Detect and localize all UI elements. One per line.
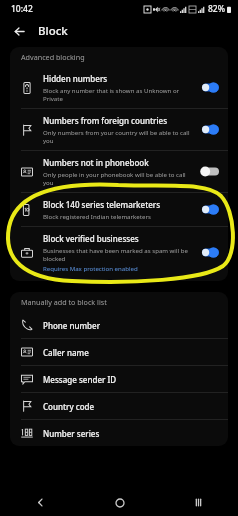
button[interactable]: Home: [80, 489, 159, 516]
button[interactable]: Country code: [10, 393, 228, 419]
staticText: Manually add to block list: [21, 297, 107, 307]
button[interactable]: Back: [0, 489, 80, 516]
staticText: Only people in your phonebook will be ab…: [43, 170, 194, 186]
button[interactable]: Enabled: [199, 204, 219, 215]
button[interactable]: Block verified businesses: [10, 227, 228, 278]
staticText: Advanced blocking: [21, 52, 85, 62]
button[interactable]: Caller name: [10, 339, 228, 365]
staticText: Caller name: [43, 347, 89, 358]
staticText: Message sender ID: [43, 374, 117, 385]
staticText: Block registered Indian telemarketers: [43, 212, 151, 220]
staticText: Requires Max protection enabled: [43, 264, 138, 272]
button[interactable]: Numbers not in phonebook: [10, 151, 228, 192]
button[interactable]: Enabled: [199, 247, 219, 258]
staticText: Block: [38, 23, 68, 39]
staticText: Numbers from foreign countries: [43, 115, 168, 126]
staticText: Only numbers from your country will be a…: [43, 128, 194, 144]
button[interactable]: Number series: [10, 420, 228, 446]
staticText: Block any number that is shown as Unknow…: [43, 86, 194, 102]
staticText: 10:42: [11, 3, 33, 15]
button[interactable]: Numbers from foreign countries: [10, 109, 228, 150]
staticText: 82%: [208, 3, 225, 15]
button[interactable]: Block 140 series telemarketers: [10, 193, 228, 226]
button[interactable]: Enabled: [199, 124, 219, 135]
button[interactable]: Message sender ID: [10, 366, 228, 392]
staticText: Country code: [43, 401, 95, 412]
staticText: Block 140 series telemarketers: [43, 199, 161, 210]
button[interactable]: Back: [8, 20, 30, 42]
staticText: Phone number: [43, 320, 101, 331]
staticText: Block verified businesses: [43, 233, 139, 244]
staticText: Numbers not in phonebook: [43, 157, 149, 168]
staticText: Hidden numbers: [43, 73, 108, 84]
button[interactable]: Disabled: [199, 166, 219, 177]
button[interactable]: Enabled: [199, 82, 219, 93]
button[interactable]: Recents: [159, 489, 238, 516]
button[interactable]: Hidden numbers: [10, 67, 228, 108]
staticText: Businesses that have been marked as spam…: [43, 246, 194, 262]
staticText: Number series: [43, 428, 100, 439]
button[interactable]: Phone number: [10, 312, 228, 338]
